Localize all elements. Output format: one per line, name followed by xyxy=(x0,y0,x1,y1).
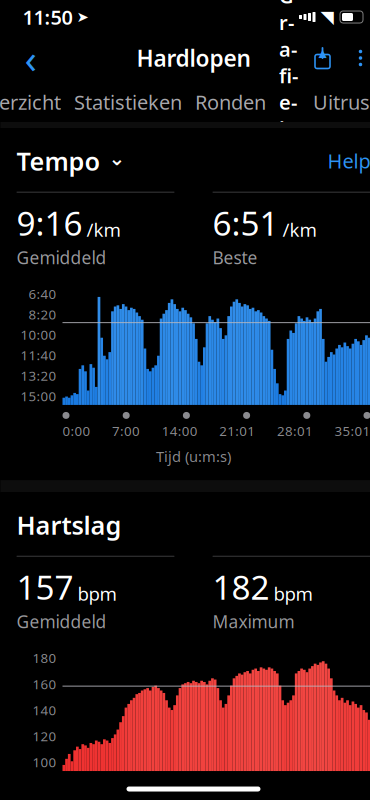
staticText: 14:00 xyxy=(162,422,198,440)
staticText: 120 xyxy=(32,727,56,745)
staticText: 180 xyxy=(32,649,56,667)
staticText: ➤ xyxy=(76,9,88,25)
button[interactable]: Back xyxy=(8,36,52,80)
staticText: /km xyxy=(86,217,120,242)
staticText: Help xyxy=(327,147,370,174)
staticText: 14:00 xyxy=(162,788,198,800)
staticText: Tempo xyxy=(16,144,100,178)
button[interactable]: Statistieken xyxy=(74,81,182,123)
staticText: bpm xyxy=(77,581,116,606)
staticText: 182 xyxy=(212,565,269,609)
staticText: /km xyxy=(282,217,316,242)
staticText: verzicht xyxy=(0,89,61,115)
staticText: Ronden xyxy=(195,89,266,115)
staticText: 140 xyxy=(32,701,56,719)
staticText: ⌄ xyxy=(108,147,125,170)
staticText: 11:50 xyxy=(22,4,72,30)
staticText: Gemiddeld xyxy=(16,246,106,269)
button[interactable]: Ronden xyxy=(195,81,266,123)
staticText: Beste xyxy=(212,246,257,269)
staticText: Hardlopen xyxy=(136,43,250,73)
button[interactable]: verzicht xyxy=(0,81,61,123)
staticText: 13:20 xyxy=(20,367,56,384)
staticText: 15:00 xyxy=(20,387,56,405)
staticText: Uitrusting xyxy=(313,89,370,115)
staticText: Grafieken xyxy=(279,0,300,195)
staticText: 9:16 xyxy=(16,201,82,245)
staticText: Tijd (u:m:s) xyxy=(156,447,231,466)
staticText: 8:20 xyxy=(28,305,56,323)
staticText: 160 xyxy=(32,675,56,693)
button[interactable]: Help xyxy=(327,147,370,174)
staticText: 7:00 xyxy=(112,422,140,440)
staticText: ▲ xyxy=(318,47,326,59)
staticText: 7:00 xyxy=(112,788,140,800)
staticText: 0:00 xyxy=(62,422,90,440)
button[interactable]: Grafieken xyxy=(279,0,300,229)
staticText: 21:01 xyxy=(219,788,255,800)
staticText: 6:40 xyxy=(28,285,56,303)
staticText: Maximum xyxy=(212,610,294,633)
button[interactable]: Share xyxy=(302,36,342,80)
button[interactable]: Uitrusting xyxy=(313,81,370,123)
button[interactable]: More options xyxy=(342,36,370,80)
staticText: 21:01 xyxy=(219,422,255,440)
staticText: 35:01 xyxy=(334,422,370,440)
staticText: Statistieken xyxy=(74,89,182,115)
staticText: Hartslag xyxy=(16,508,121,542)
staticText: 11:40 xyxy=(20,346,56,364)
button[interactable]: Tempo xyxy=(16,144,125,178)
staticText: 100 xyxy=(32,753,56,771)
staticText: bpm xyxy=(273,581,312,606)
staticText: Gemiddeld xyxy=(16,610,106,633)
staticText: ‹ xyxy=(24,31,36,84)
staticText: ◥ xyxy=(320,7,333,27)
staticText: 10:00 xyxy=(20,326,56,343)
staticText: 6:51 xyxy=(212,201,278,245)
staticText: 157 xyxy=(16,565,73,609)
staticText: 28:01 xyxy=(277,422,313,440)
